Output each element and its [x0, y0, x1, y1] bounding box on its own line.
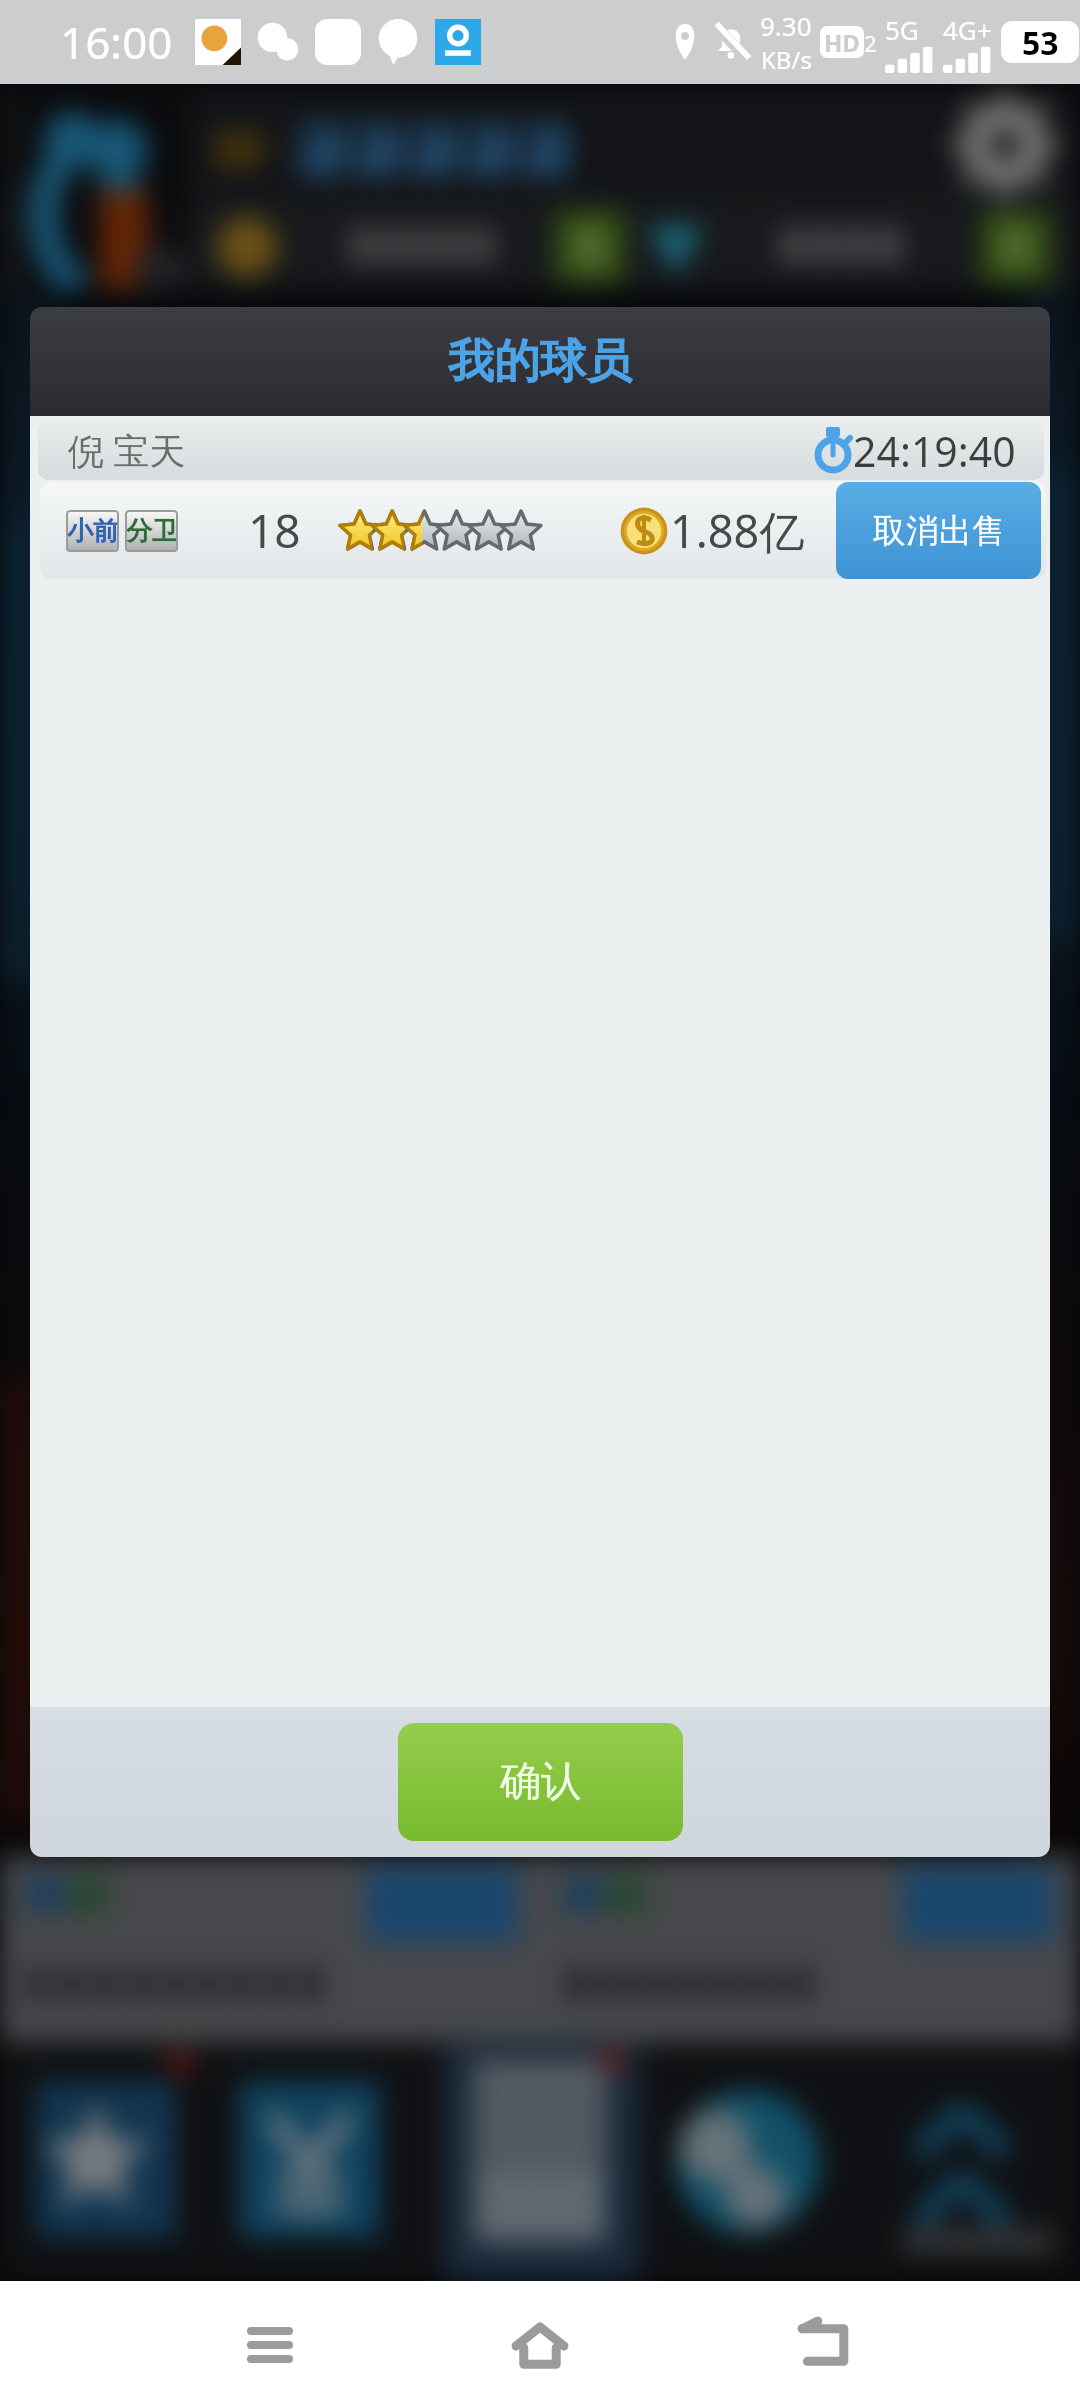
staticText: 确认	[500, 1756, 582, 1808]
other: Location	[672, 24, 698, 60]
staticText: 2	[864, 28, 877, 58]
staticText: 倪 宝天	[68, 426, 186, 475]
staticText: 53	[1022, 21, 1059, 63]
staticText: 1.88亿	[670, 500, 805, 561]
staticText: KB/s	[761, 43, 812, 76]
staticText: 小前	[67, 515, 119, 548]
staticText: 取消出售	[873, 510, 1005, 552]
staticText: 9.30	[760, 8, 812, 43]
staticText: 5G	[885, 12, 919, 47]
button[interactable]: Back	[763, 2285, 883, 2405]
staticText: 16:00	[60, 12, 173, 72]
button[interactable]: Recent apps	[210, 2285, 330, 2405]
staticText: 分卫	[126, 515, 178, 548]
other: Time left	[813, 428, 853, 474]
staticText: HD	[824, 26, 860, 58]
staticText: 24:19:40	[853, 423, 1016, 479]
button[interactable]: 确认	[398, 1723, 683, 1841]
staticText: 我的球员	[448, 333, 632, 391]
button[interactable]: Home	[480, 2285, 600, 2405]
staticText: 4G+	[943, 12, 992, 47]
staticText: 18	[248, 499, 301, 562]
button[interactable]: 取消出售	[836, 482, 1041, 579]
